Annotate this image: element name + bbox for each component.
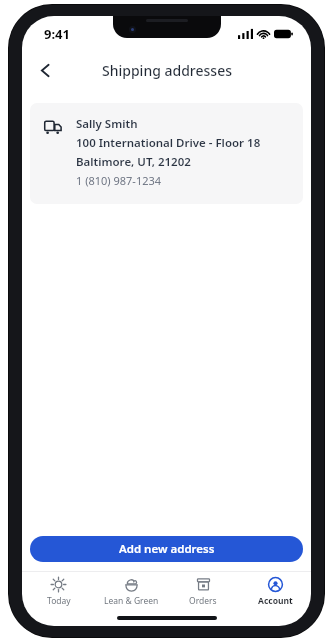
staticText: Orders [189, 595, 217, 607]
staticText: Add new address [119, 541, 215, 557]
staticText: Sally Smith [76, 116, 138, 132]
staticText: Baltimore, UT, 21202 [76, 154, 191, 170]
staticText: 1 (810) 987-1234 [76, 173, 162, 188]
button[interactable]: Lean & Green [95, 572, 167, 612]
button[interactable]: Sally Smith [30, 103, 303, 204]
staticText: Lean & Green [104, 595, 159, 607]
staticText: Account [258, 595, 293, 607]
button[interactable]: Today [22, 572, 95, 612]
button[interactable]: Account [239, 572, 311, 612]
button[interactable]: Add new address [30, 536, 303, 562]
staticText: 100 International Drive - Floor 18 [76, 135, 261, 151]
staticText: Today [47, 595, 71, 607]
staticText: 9:41 [44, 25, 70, 43]
button[interactable]: Back [28, 53, 62, 87]
staticText: Shipping addresses [102, 61, 232, 80]
button[interactable]: Orders [167, 572, 239, 612]
